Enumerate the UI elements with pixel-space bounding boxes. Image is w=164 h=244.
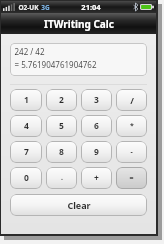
staticText: - xyxy=(130,147,133,157)
staticText: / xyxy=(130,94,134,106)
staticText: + xyxy=(94,172,99,184)
staticText: = 5.761904761904762 xyxy=(14,59,97,70)
button[interactable]: 1 xyxy=(10,89,42,111)
staticText: . xyxy=(61,173,63,183)
button[interactable]: = xyxy=(116,167,147,189)
staticText: 9 xyxy=(94,146,99,158)
button[interactable]: + xyxy=(81,167,112,189)
staticText: 3G xyxy=(41,3,50,12)
staticText: 8 xyxy=(59,146,64,158)
button[interactable]: 8 xyxy=(46,141,77,163)
staticText: 21:04 xyxy=(81,2,101,12)
button[interactable]: . xyxy=(46,167,77,189)
button[interactable]: 7 xyxy=(10,141,42,163)
staticText: 2 xyxy=(59,94,64,106)
staticText: 4 xyxy=(24,120,29,132)
staticText: 3 xyxy=(94,94,99,106)
button[interactable]: 242 / 42 xyxy=(10,43,147,76)
button[interactable]: * xyxy=(116,115,147,137)
button[interactable]: 9 xyxy=(81,141,112,163)
staticText: ITWriting Calc xyxy=(44,17,114,31)
staticText: 1 xyxy=(24,94,29,106)
staticText: 0 xyxy=(24,172,29,184)
staticText: 6 xyxy=(94,120,99,132)
button[interactable]: 0 xyxy=(10,167,42,189)
button[interactable]: - xyxy=(116,141,147,163)
button[interactable]: 3 xyxy=(81,89,112,111)
button[interactable]: 4 xyxy=(10,115,42,137)
staticText: = xyxy=(129,173,134,183)
staticText: 242 / 42 xyxy=(14,46,45,57)
button[interactable]: Clear xyxy=(10,194,147,216)
button[interactable]: 6 xyxy=(81,115,112,137)
button[interactable]: 5 xyxy=(46,115,77,137)
staticText: 5 xyxy=(59,120,64,132)
button[interactable]: 2 xyxy=(46,89,77,111)
staticText: 7 xyxy=(24,146,29,158)
staticText: * xyxy=(130,121,134,131)
staticText: O2-UK xyxy=(18,3,39,12)
button[interactable]: / xyxy=(116,89,147,111)
staticText: Clear xyxy=(67,199,91,211)
